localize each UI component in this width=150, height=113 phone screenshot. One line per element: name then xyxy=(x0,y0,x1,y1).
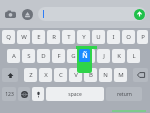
button[interactable]: Apps xyxy=(21,8,34,21)
button[interactable]: E xyxy=(32,30,45,44)
staticText: 123 xyxy=(5,91,14,98)
staticText: B xyxy=(89,71,93,79)
button[interactable]: space xyxy=(46,87,104,101)
button[interactable]: R xyxy=(47,30,60,44)
button[interactable]: L xyxy=(127,49,140,63)
staticText: F xyxy=(57,52,61,60)
button[interactable]: G xyxy=(67,49,80,63)
staticText: O xyxy=(126,33,131,41)
staticText: I xyxy=(112,33,115,41)
staticText: return xyxy=(117,91,132,98)
button[interactable]: F xyxy=(52,49,65,63)
button[interactable]: H xyxy=(82,49,95,63)
staticText: space xyxy=(68,91,82,98)
button[interactable]: X xyxy=(39,68,52,82)
staticText: K xyxy=(117,52,121,60)
staticText: A xyxy=(12,52,16,60)
button[interactable]: Backspace xyxy=(133,68,148,82)
button[interactable]: C xyxy=(54,68,67,82)
staticText: Q xyxy=(6,33,11,41)
button[interactable]: I xyxy=(107,30,120,44)
staticText: Y xyxy=(82,33,86,41)
button[interactable]: B xyxy=(84,68,97,82)
staticText: N xyxy=(103,71,108,79)
button[interactable]: U xyxy=(92,30,105,44)
staticText: W xyxy=(21,33,27,41)
button[interactable]: Send xyxy=(38,7,146,21)
staticText: M xyxy=(118,71,124,79)
button[interactable]: W xyxy=(17,30,30,44)
staticText: T xyxy=(67,33,71,41)
button[interactable]: N xyxy=(99,68,112,82)
staticText: X xyxy=(44,71,48,79)
button[interactable]: Z xyxy=(24,68,37,82)
button[interactable]: J xyxy=(97,49,110,63)
button[interactable]: Change keyboard xyxy=(18,87,30,101)
staticText: C xyxy=(59,71,63,79)
staticText: E xyxy=(37,33,41,41)
button[interactable]: T xyxy=(62,30,75,44)
staticText: L xyxy=(132,52,136,60)
staticText: P xyxy=(141,33,145,41)
button[interactable]: A xyxy=(7,49,20,63)
button[interactable]: Send xyxy=(134,9,145,20)
button[interactable]: O xyxy=(122,30,135,44)
staticText: U xyxy=(96,33,101,41)
staticText: V xyxy=(74,71,78,79)
button[interactable]: D xyxy=(37,49,50,63)
button[interactable]: Camera xyxy=(4,8,17,21)
button[interactable]: Y xyxy=(77,30,90,44)
button[interactable]: M xyxy=(114,68,127,82)
staticText: H xyxy=(86,52,91,60)
staticText: J xyxy=(103,52,105,60)
staticText: G xyxy=(71,52,76,60)
button[interactable]: S xyxy=(22,49,35,63)
button[interactable]: P xyxy=(137,30,148,44)
button[interactable]: Ñ xyxy=(77,47,92,73)
staticText: R xyxy=(52,33,56,41)
button[interactable]: Shift xyxy=(2,68,18,82)
button[interactable]: K xyxy=(112,49,125,63)
staticText: Ñ xyxy=(82,51,88,61)
button[interactable]: Q xyxy=(2,30,15,44)
staticText: S xyxy=(27,52,31,60)
staticText: Z xyxy=(29,71,33,79)
button[interactable]: return xyxy=(106,87,142,101)
button[interactable]: V xyxy=(69,68,82,82)
button[interactable]: 123 xyxy=(2,87,16,101)
staticText: D xyxy=(41,52,46,60)
button[interactable]: Dictation xyxy=(32,87,44,101)
